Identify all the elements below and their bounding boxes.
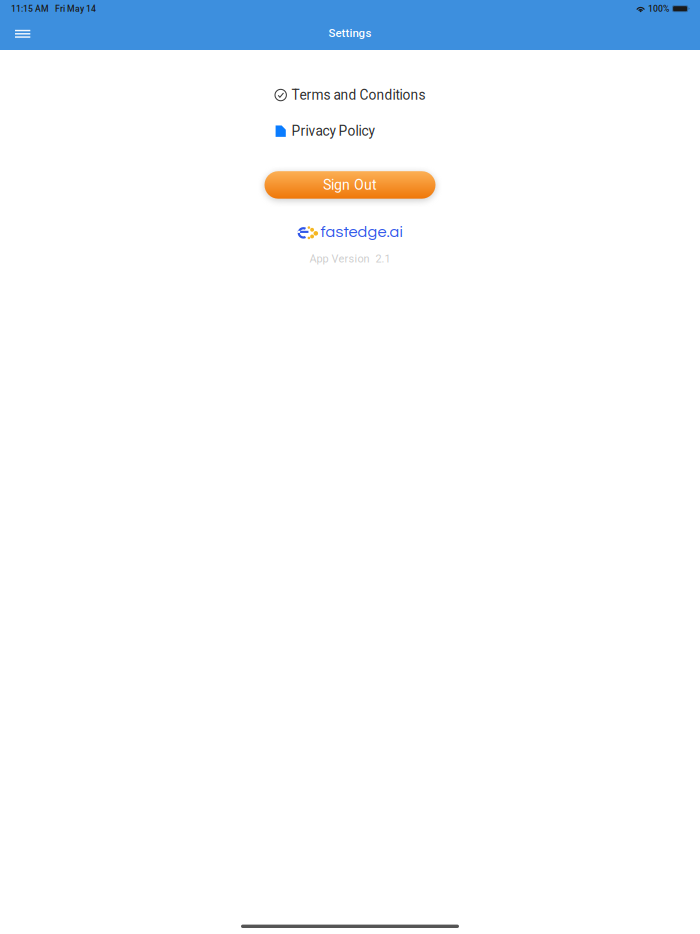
staticText: Settings <box>328 26 371 40</box>
staticText: 100% <box>648 4 669 14</box>
staticText: 11:15 AM <box>11 4 49 14</box>
button[interactable]: Privacy Policy <box>275 119 374 143</box>
staticText: fastedge.ai <box>320 224 402 240</box>
button[interactable]: Sign Out <box>264 171 435 199</box>
staticText: App Version 2.1 <box>309 252 390 265</box>
button[interactable]: Menu <box>8 23 37 47</box>
staticText: Terms and Conditions <box>291 87 425 103</box>
staticText: Privacy Policy <box>291 123 374 139</box>
button[interactable]: Terms and Conditions <box>275 83 425 107</box>
staticText: Fri May 14 <box>55 4 96 14</box>
staticText: Sign Out <box>323 177 377 193</box>
